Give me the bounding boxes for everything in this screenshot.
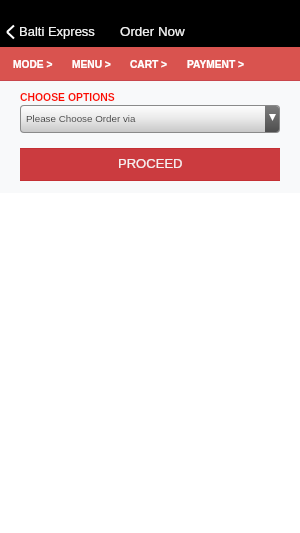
staticText: MENU >	[72, 59, 111, 70]
button[interactable]: MODE >	[0, 47, 72, 81]
staticText: PROCEED	[118, 156, 183, 171]
other: Open order method options	[265, 106, 279, 132]
staticText: Balti Express	[19, 24, 95, 39]
staticText: PAYMENT >	[187, 59, 244, 70]
staticText: Order Now	[120, 24, 185, 39]
staticText: MODE >	[13, 59, 53, 70]
button[interactable]: PROCEED	[20, 148, 280, 181]
staticText: CHOOSE OPTIONS	[20, 92, 115, 104]
staticText: CART >	[130, 59, 168, 70]
button[interactable]: MENU >	[72, 47, 130, 81]
button[interactable]: PAYMENT >	[187, 47, 264, 81]
button[interactable]: CART >	[130, 47, 187, 81]
staticText: Please Choose Order via	[26, 113, 136, 124]
other: Back	[6, 25, 14, 39]
button[interactable]: Back	[0, 24, 101, 39]
button[interactable]: Please Choose Order via	[21, 106, 279, 132]
